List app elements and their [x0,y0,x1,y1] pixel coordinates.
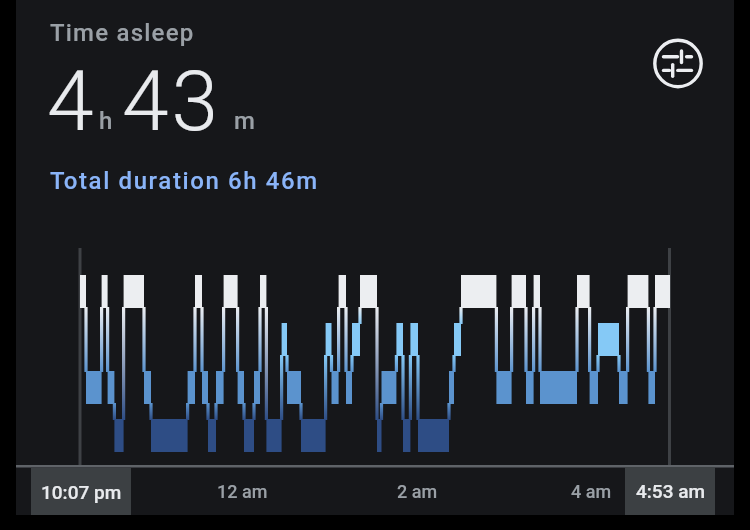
staticText: Total duration 6h 46m [50,167,319,195]
staticText: 12 am [217,481,268,502]
staticText: 4:53 am [636,480,705,502]
staticText: m [234,107,255,135]
staticText: 4 am [571,481,612,502]
staticText: 2 am [397,481,438,502]
staticText: 4 [47,52,94,150]
staticText: Time asleep [50,19,195,47]
staticText: h [99,107,113,135]
button[interactable] [650,36,706,92]
button[interactable]: 4:53 am [625,467,715,515]
staticText: 43 [122,52,222,150]
staticText: 10:07 pm [41,481,122,503]
button[interactable]: 10:07 pm [31,468,131,515]
